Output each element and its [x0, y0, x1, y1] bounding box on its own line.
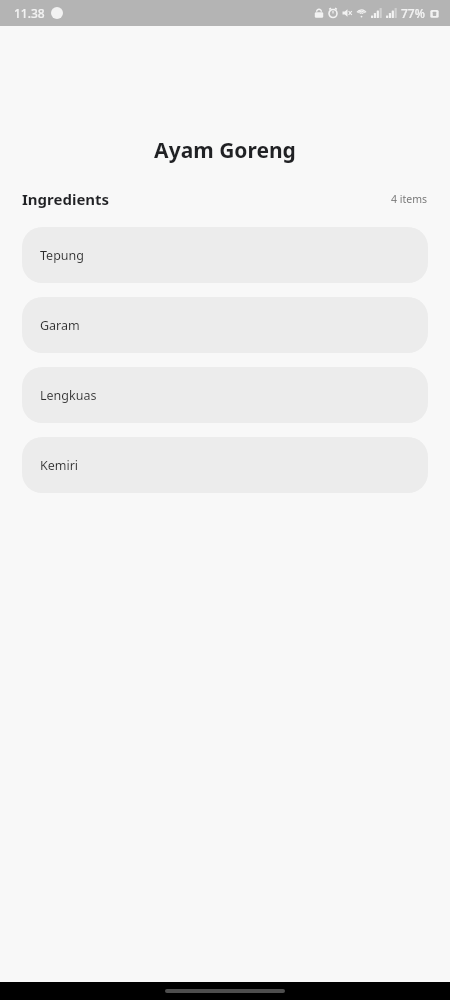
staticText: Lengkuas: [40, 387, 97, 404]
button[interactable]: Kemiri: [22, 437, 428, 493]
button[interactable]: Home gesture handle: [165, 989, 285, 993]
staticText: 77%: [401, 5, 425, 21]
staticText: 4 items: [391, 192, 428, 206]
button[interactable]: Tepung: [22, 227, 428, 283]
staticText: Garam: [40, 317, 80, 334]
staticText: Kemiri: [40, 457, 79, 474]
button[interactable]: Lengkuas: [22, 367, 428, 423]
staticText: 11.38: [14, 5, 45, 21]
staticText: Ayam Goreng: [0, 136, 450, 165]
button[interactable]: Garam: [22, 297, 428, 353]
staticText: Ingredients: [22, 189, 110, 209]
staticText: Tepung: [40, 247, 84, 264]
